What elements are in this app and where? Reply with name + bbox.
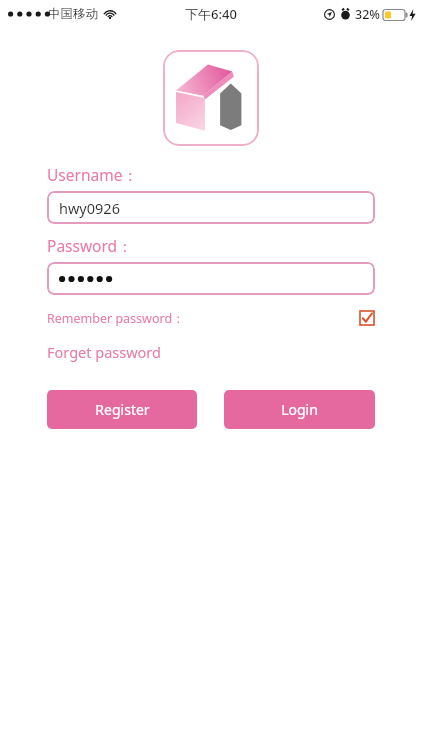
button[interactable]: Remember password checkbox: [359, 310, 375, 326]
staticText: 下午6:40: [185, 5, 237, 23]
staticText: Password：: [47, 235, 133, 256]
staticText: 中国移动: [48, 6, 98, 22]
button[interactable]: Forget password: [47, 342, 161, 362]
staticText: Username：: [47, 164, 138, 185]
staticText: Forget password: [47, 342, 161, 362]
staticText: Register: [95, 400, 150, 419]
staticText: Remember password：: [47, 310, 185, 327]
button[interactable]: Remember password：: [47, 307, 375, 329]
button[interactable]: [47, 262, 375, 295]
button[interactable]: hwy0926: [47, 191, 375, 224]
button[interactable]: Register: [47, 390, 197, 429]
staticText: hwy0926: [59, 198, 120, 218]
staticText: Login: [281, 400, 318, 419]
staticText: 32%: [355, 6, 380, 23]
button[interactable]: Login: [224, 390, 375, 429]
other: App logo: [163, 50, 259, 146]
